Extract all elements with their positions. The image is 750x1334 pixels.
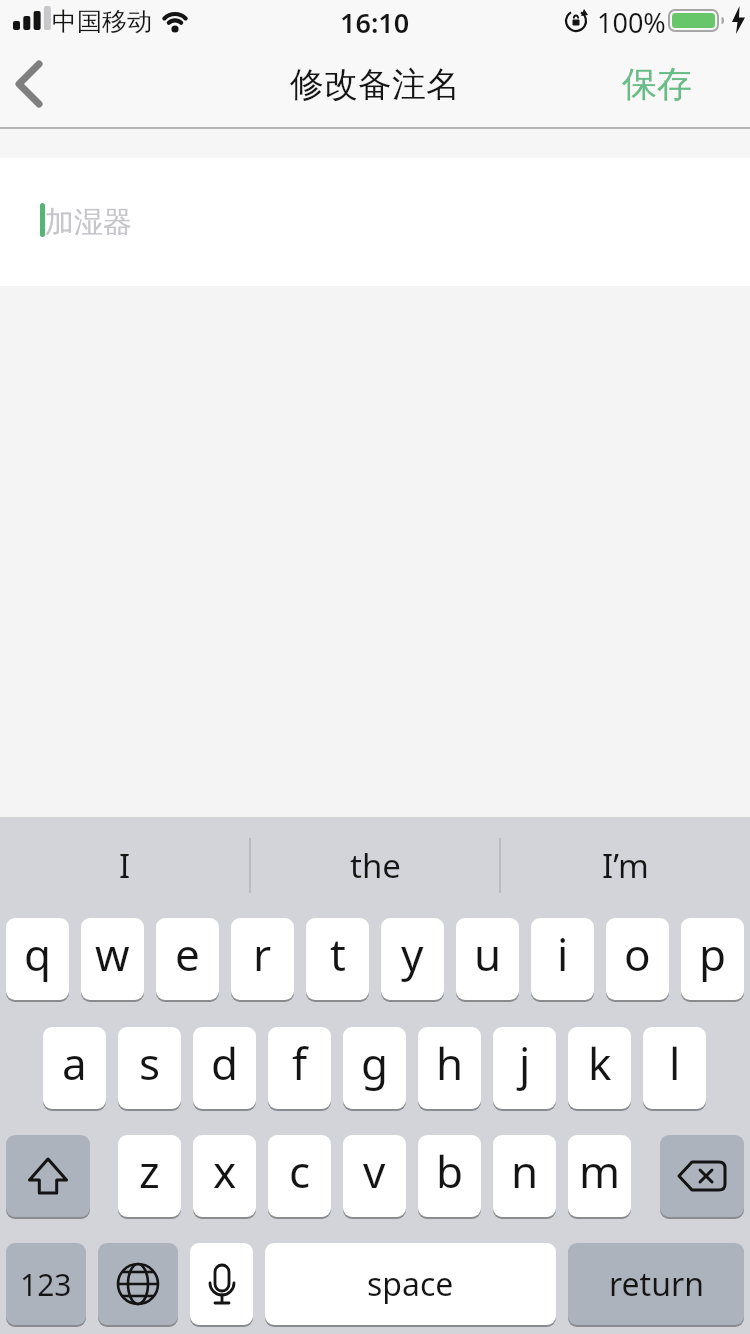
button[interactable]: j [493,1027,556,1109]
button[interactable]: w [81,918,144,1000]
staticText: 中国移动 [52,6,152,37]
staticText: I’m [602,843,649,888]
button[interactable]: l [643,1027,706,1109]
staticText: e [175,924,200,984]
button[interactable]: r [231,918,294,1000]
button[interactable]: t [306,918,369,1000]
staticText: 修改备注名 [290,63,460,106]
staticText: k [588,1033,612,1093]
button[interactable]: d [193,1027,256,1109]
staticText: return [609,1262,704,1306]
staticText: r [253,924,272,984]
button[interactable]: g [343,1027,406,1109]
button[interactable]: c [268,1135,331,1217]
button[interactable]: I’m [500,835,750,895]
button[interactable]: a [43,1027,106,1109]
button[interactable]: e [156,918,219,1000]
button[interactable]: space [265,1243,556,1325]
button[interactable]: the [250,835,500,895]
staticText: w [95,924,130,984]
staticText: 123 [20,1264,72,1305]
staticText: a [62,1033,87,1093]
button[interactable] [10,56,54,112]
staticText: h [436,1033,464,1093]
staticText: l [669,1033,681,1093]
button[interactable] [6,1135,90,1217]
button[interactable]: y [381,918,444,1000]
button[interactable]: 保存 [600,42,714,126]
button[interactable]: x [193,1135,256,1217]
button[interactable]: 123 [6,1243,86,1325]
button[interactable]: k [568,1027,631,1109]
staticText: 16:10 [340,4,410,38]
staticText: z [139,1141,160,1201]
button[interactable]: f [268,1027,331,1109]
staticText: x [213,1141,237,1201]
staticText: o [624,924,651,984]
button[interactable]: I [0,835,250,895]
staticText: t [330,924,346,984]
staticText: d [211,1033,239,1093]
button[interactable]: v [343,1135,406,1217]
staticText: f [292,1033,308,1093]
button[interactable]: u [456,918,519,1000]
button[interactable] [190,1243,253,1325]
button[interactable]: i [531,918,594,1000]
button[interactable]: m [568,1135,631,1217]
button[interactable]: q [6,918,69,1000]
button[interactable]: n [493,1135,556,1217]
button[interactable]: s [118,1027,181,1109]
button[interactable]: return [568,1243,744,1325]
staticText: I [119,843,131,888]
staticText: m [579,1141,621,1201]
button[interactable]: b [418,1135,481,1217]
staticText: the [350,843,401,888]
button[interactable]: z [118,1135,181,1217]
staticText: s [139,1033,161,1093]
staticText: b [436,1141,464,1201]
staticText: c [289,1141,311,1201]
staticText: j [519,1033,531,1093]
staticText: v [363,1141,386,1201]
button[interactable]: h [418,1027,481,1109]
staticText: space [367,1262,454,1306]
staticText: q [24,924,52,984]
staticText: y [401,924,424,984]
button[interactable]: o [606,918,669,1000]
button[interactable] [0,158,750,286]
staticText: 加湿器 [45,204,132,241]
staticText: n [511,1141,539,1201]
staticText: g [361,1033,389,1093]
staticText: i [557,924,569,984]
staticText: 100% [597,4,666,38]
staticText: 保存 [622,62,692,106]
button[interactable] [98,1243,178,1325]
button[interactable] [660,1135,744,1217]
staticText: p [699,924,727,984]
button[interactable]: p [681,918,744,1000]
staticText: u [474,924,502,984]
